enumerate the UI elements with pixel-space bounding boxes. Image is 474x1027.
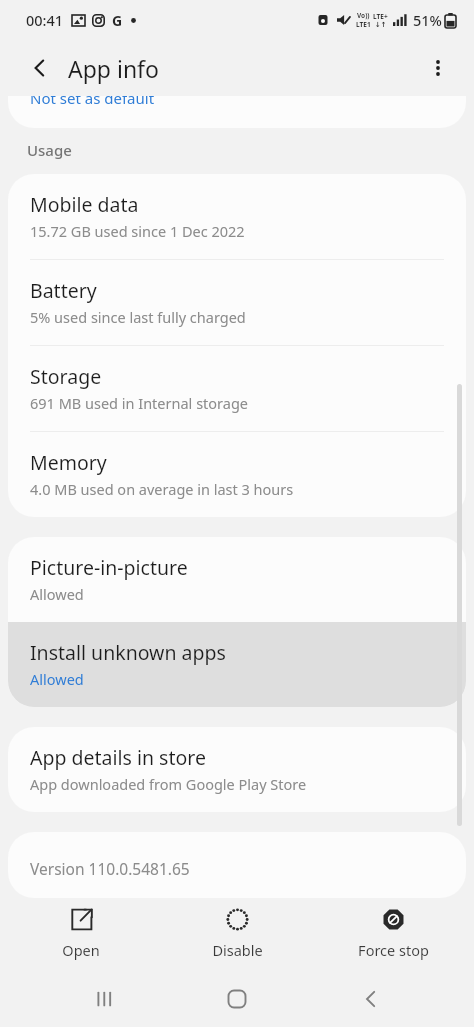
button[interactable]: More options: [420, 50, 456, 86]
staticText: 5% used since last fully charged: [30, 307, 246, 327]
staticText: Version 110.0.5481.65: [30, 858, 190, 879]
staticText: LTE+: [373, 12, 388, 21]
button[interactable]: Memory: [8, 432, 466, 517]
staticText: Storage: [30, 363, 102, 390]
staticText: Open: [62, 940, 100, 960]
staticText: Allowed: [30, 584, 84, 604]
staticText: Install unknown apps: [30, 639, 226, 666]
staticText: Picture-in-picture: [30, 554, 188, 581]
staticText: App downloaded from Google Play Store: [30, 774, 307, 794]
staticText: Usage: [27, 140, 72, 160]
staticText: Memory: [30, 449, 107, 476]
staticText: Battery: [30, 277, 97, 304]
button[interactable]: Recents: [74, 970, 134, 1027]
staticText: Mobile data: [30, 191, 139, 218]
staticText: Disable: [212, 940, 263, 960]
staticText: App info: [68, 53, 159, 84]
button[interactable]: Battery: [8, 260, 466, 345]
button[interactable]: Back: [341, 970, 401, 1027]
button[interactable]: Install unknown apps: [8, 622, 466, 707]
button[interactable]: Mobile data: [8, 174, 466, 259]
button[interactable]: Back: [22, 50, 58, 86]
button[interactable]: Picture-in-picture: [8, 537, 466, 622]
staticText: Allowed: [30, 669, 84, 689]
staticText: 691 MB used in Internal storage: [30, 393, 249, 413]
staticText: 51%: [413, 10, 442, 30]
staticText: 15.72 GB used since 1 Dec 2022: [30, 221, 245, 241]
button[interactable]: Disable: [162, 898, 312, 970]
button[interactable]: Not set as default: [8, 96, 466, 128]
staticText: LTE1: [356, 20, 371, 29]
button[interactable]: App details in store: [8, 727, 466, 812]
staticText: App details in store: [30, 744, 206, 771]
staticText: ↓↑: [375, 21, 387, 29]
staticText: 4.0 MB used on average in last 3 hours: [30, 479, 294, 499]
button[interactable]: Storage: [8, 346, 466, 431]
button[interactable]: Open: [6, 898, 156, 970]
staticText: G: [112, 11, 123, 30]
button[interactable]: Version 110.0.5481.65: [8, 832, 466, 898]
staticText: Not set as default: [30, 96, 155, 108]
staticText: 00:41: [26, 10, 64, 30]
button[interactable]: Home: [207, 970, 267, 1027]
button[interactable]: Force stop: [318, 898, 468, 970]
staticText: Vo)): [357, 11, 370, 20]
staticText: Force stop: [358, 940, 429, 960]
